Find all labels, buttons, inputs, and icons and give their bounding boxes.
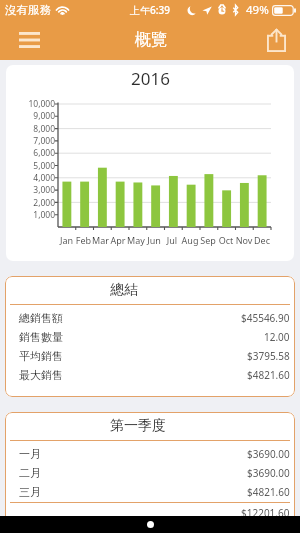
staticText: 沒有服務 <box>5 3 51 17</box>
staticText: $45546.90 <box>241 311 290 325</box>
staticText: Nov <box>235 234 253 246</box>
staticText: 銷售數量 <box>19 330 63 344</box>
button[interactable]: 平均銷售 <box>5 346 295 365</box>
staticText: Jul <box>163 234 181 246</box>
staticText: $4821.60 <box>247 368 290 382</box>
staticText: 3,000 <box>9 184 55 196</box>
button[interactable]: Share <box>258 22 294 58</box>
button[interactable]: 三月 <box>5 482 295 501</box>
staticText: 8,000 <box>9 123 55 135</box>
button[interactable]: Menu <box>11 22 47 58</box>
staticText: 一月 <box>19 447 41 461</box>
staticText: 1,000 <box>9 209 55 221</box>
staticText: 總銷售額 <box>19 311 63 325</box>
staticText: Dec <box>253 234 271 246</box>
button[interactable]: 二月 <box>5 463 295 482</box>
button[interactable]: 銷售數量 <box>5 327 295 346</box>
staticText: $3690.00 <box>247 466 290 480</box>
staticText: 總結 <box>110 281 138 299</box>
staticText: 7,000 <box>9 135 55 147</box>
staticText: 概覽 <box>135 30 167 50</box>
staticText: $4821.60 <box>247 485 290 499</box>
staticText: Jan <box>58 234 75 246</box>
staticText: 9,000 <box>9 110 55 122</box>
button[interactable]: 總銷售額 <box>5 308 295 327</box>
staticText: 最大銷售 <box>19 368 63 382</box>
staticText: 2,000 <box>9 197 55 209</box>
staticText: Apr <box>109 234 127 246</box>
staticText: 二月 <box>19 466 41 480</box>
staticText: 49% <box>246 2 269 18</box>
staticText: $12201.60 <box>241 506 290 520</box>
button[interactable]: 最大銷售 <box>5 365 295 384</box>
staticText: Jun <box>145 234 163 246</box>
staticText: 4,000 <box>9 172 55 184</box>
button[interactable]: 一月 <box>5 444 295 463</box>
staticText: 第一季度 <box>110 417 166 435</box>
staticText: 平均銷售 <box>19 349 63 363</box>
staticText: Aug <box>181 234 199 246</box>
staticText: $3795.58 <box>247 349 290 363</box>
staticText: 三月 <box>19 485 41 499</box>
staticText: Oct <box>217 234 235 246</box>
staticText: 12.00 <box>264 330 290 344</box>
staticText: $3690.00 <box>247 447 290 461</box>
staticText: 6,000 <box>9 147 55 159</box>
staticText: Mar <box>92 234 109 246</box>
button[interactable]: $12201.60 <box>5 503 295 522</box>
staticText: Sep <box>199 234 217 246</box>
staticText: 10,000 <box>9 98 55 110</box>
staticText: Feb <box>75 234 92 246</box>
staticText: 上午6:39 <box>130 3 170 17</box>
staticText: May <box>127 234 145 246</box>
staticText: 2016 <box>131 67 170 90</box>
staticText: 5,000 <box>9 160 55 172</box>
